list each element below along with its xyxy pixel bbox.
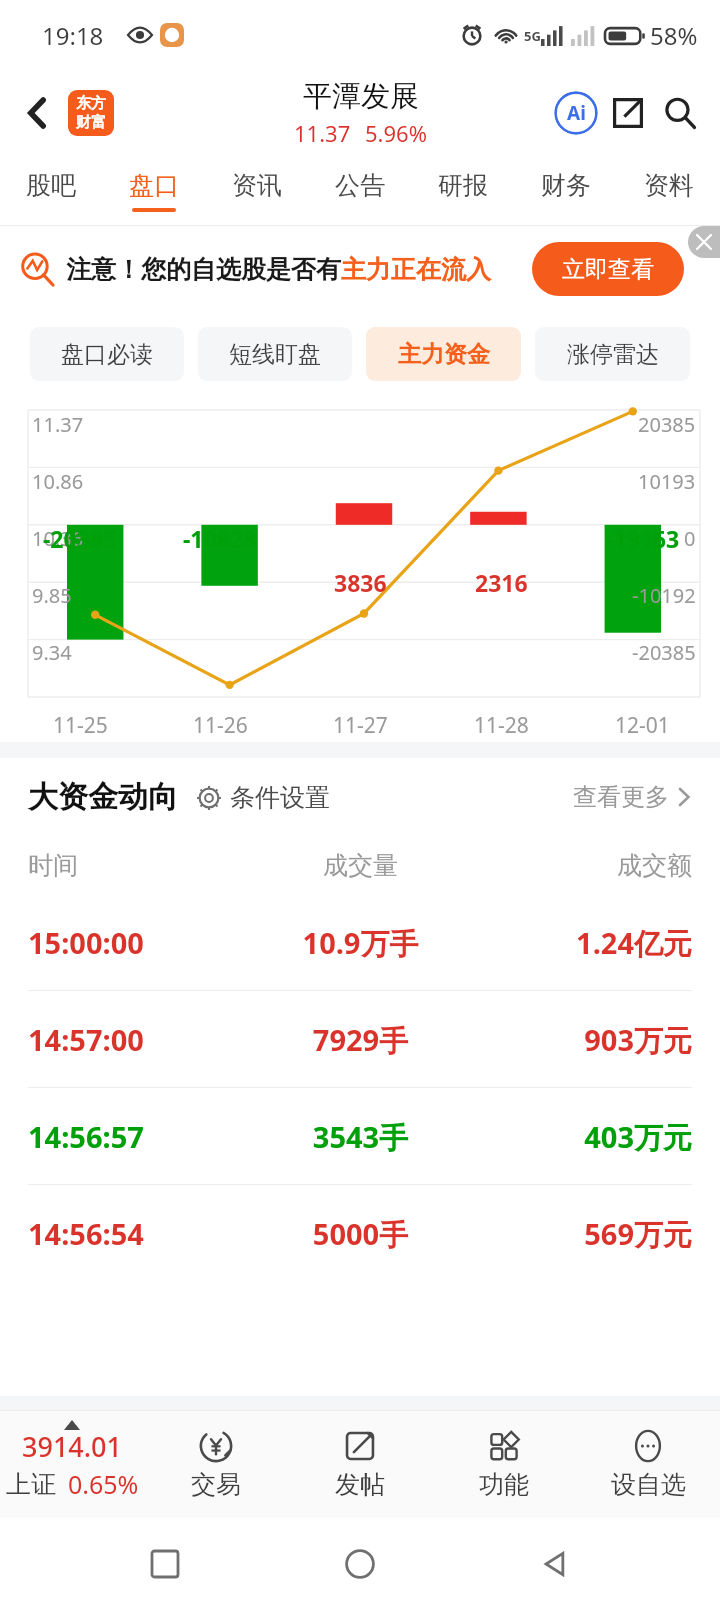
staticText: 平潭发展 [303, 78, 419, 115]
button[interactable]: 盘口 [121, 170, 187, 212]
staticText: 10.86 [32, 468, 84, 495]
staticText: 3836 [334, 567, 387, 598]
staticText: 14:56:57 [28, 1117, 250, 1156]
staticText: 财务 [541, 170, 591, 201]
staticText: 9.34 [32, 639, 72, 666]
staticText: 条件设置 [230, 782, 330, 813]
button[interactable]: 3914.01 [0, 1410, 144, 1518]
staticText: 10.9万手 [250, 923, 471, 963]
staticText: 12-01 [615, 711, 670, 740]
button[interactable]: 14:56:54 [0, 1185, 720, 1282]
button[interactable]: 交易 [144, 1410, 288, 1518]
staticText: 14:56:54 [28, 1214, 250, 1253]
staticText: 主力资金 [398, 340, 490, 369]
staticText: 19:18 [42, 19, 104, 52]
button[interactable]: 主页 [330, 1534, 390, 1594]
staticText: 盘口 [129, 170, 179, 201]
button[interactable]: 资讯 [224, 170, 290, 212]
staticText: 大资金动向 [28, 778, 178, 816]
button[interactable]: 关闭 [688, 226, 720, 258]
button[interactable]: 条件设置 [196, 782, 330, 813]
staticText: 903万元 [471, 1020, 692, 1060]
staticText: -10192 [632, 582, 696, 609]
staticText: 短线盯盘 [229, 340, 321, 369]
button[interactable]: 资料 [636, 170, 702, 212]
button[interactable]: 发帖 [288, 1410, 432, 1518]
staticText: 0.65% [68, 1467, 139, 1501]
staticText: 10.36 [32, 525, 84, 552]
button[interactable]: 短线盯盘 [198, 327, 352, 381]
button[interactable]: 15:00:00 [0, 894, 720, 991]
button[interactable]: 东方财富 [68, 90, 114, 136]
staticText: 财富 [76, 113, 106, 132]
staticText: 3543手 [250, 1117, 471, 1157]
staticText: 东方 [76, 94, 106, 113]
staticText: 成交量 [250, 850, 471, 881]
staticText: 设自选 [611, 1469, 686, 1500]
staticText: 资料 [644, 170, 694, 201]
staticText: 交易 [191, 1469, 241, 1500]
button[interactable]: 14:57:00 [0, 991, 720, 1088]
staticText: 5000手 [250, 1214, 471, 1254]
staticText: 569万元 [471, 1214, 692, 1254]
staticText: 5G [524, 27, 541, 45]
staticText: -10828 [183, 523, 257, 554]
button[interactable]: 返回 [12, 87, 64, 139]
staticText: 成交额 [471, 850, 692, 881]
staticText: 股吧 [26, 170, 76, 201]
staticText: 15:00:00 [28, 923, 250, 962]
staticText: 0 [684, 525, 696, 552]
staticText: 58% [650, 19, 698, 52]
staticText: 上证 [6, 1469, 56, 1500]
staticText: 功能 [479, 1469, 529, 1500]
staticText: 11-25 [53, 711, 108, 740]
staticText: -20385 [632, 639, 696, 666]
staticText: 11-28 [474, 711, 529, 740]
button[interactable]: 财务 [533, 170, 599, 212]
staticText: -19163 [606, 523, 680, 554]
button[interactable]: 返回 [525, 1534, 585, 1594]
staticText: 查看更多 [573, 782, 669, 812]
staticText: 14:57:00 [28, 1020, 250, 1059]
staticText: 时间 [28, 850, 250, 881]
staticText: Ai [567, 100, 586, 126]
staticText: 10193 [638, 468, 696, 495]
staticText: 3914.01 [22, 1428, 123, 1465]
button[interactable]: 搜索 [654, 87, 706, 139]
staticText: 立即查看 [562, 255, 654, 284]
button[interactable]: 查看更多 [573, 782, 692, 812]
staticText: 盘口必读 [61, 340, 153, 369]
staticText: 20385 [638, 411, 696, 438]
button[interactable]: 研报 [430, 170, 496, 212]
button[interactable]: AI [550, 87, 602, 139]
button[interactable]: 最近任务 [135, 1534, 195, 1594]
button[interactable]: 股吧 [18, 170, 84, 212]
staticText: 2316 [475, 567, 528, 598]
staticText: 11-26 [193, 711, 248, 740]
staticText: 资讯 [232, 170, 282, 201]
button[interactable]: 分享 [602, 87, 654, 139]
button[interactable]: 盘口必读 [30, 327, 184, 381]
button[interactable]: 立即查看 [532, 242, 684, 296]
staticText: 主力正在流入 [341, 254, 491, 285]
staticText: 11.37 [32, 411, 84, 438]
staticText: -20385 [43, 523, 117, 554]
button[interactable]: 主力资金 [366, 327, 521, 381]
staticText: 发帖 [335, 1469, 385, 1500]
button[interactable]: 功能 [432, 1410, 576, 1518]
staticText: 9.85 [32, 582, 72, 609]
staticText: 403万元 [471, 1117, 692, 1157]
staticText: 11.37 [294, 118, 351, 148]
button[interactable]: 涨停雷达 [535, 327, 690, 381]
button[interactable]: 公告 [327, 170, 393, 212]
button[interactable]: 14:56:57 [0, 1088, 720, 1185]
staticText: 注意！您的自选股是否有 [66, 254, 341, 285]
button[interactable]: 设自选 [576, 1410, 720, 1518]
staticText: 7929手 [250, 1020, 471, 1060]
staticText: 涨停雷达 [567, 340, 659, 369]
staticText: 研报 [438, 170, 488, 201]
staticText: 1.24亿元 [471, 923, 692, 963]
staticText: 公告 [335, 170, 385, 201]
staticText: 11-27 [333, 711, 388, 740]
staticText: 5.96% [365, 118, 427, 148]
